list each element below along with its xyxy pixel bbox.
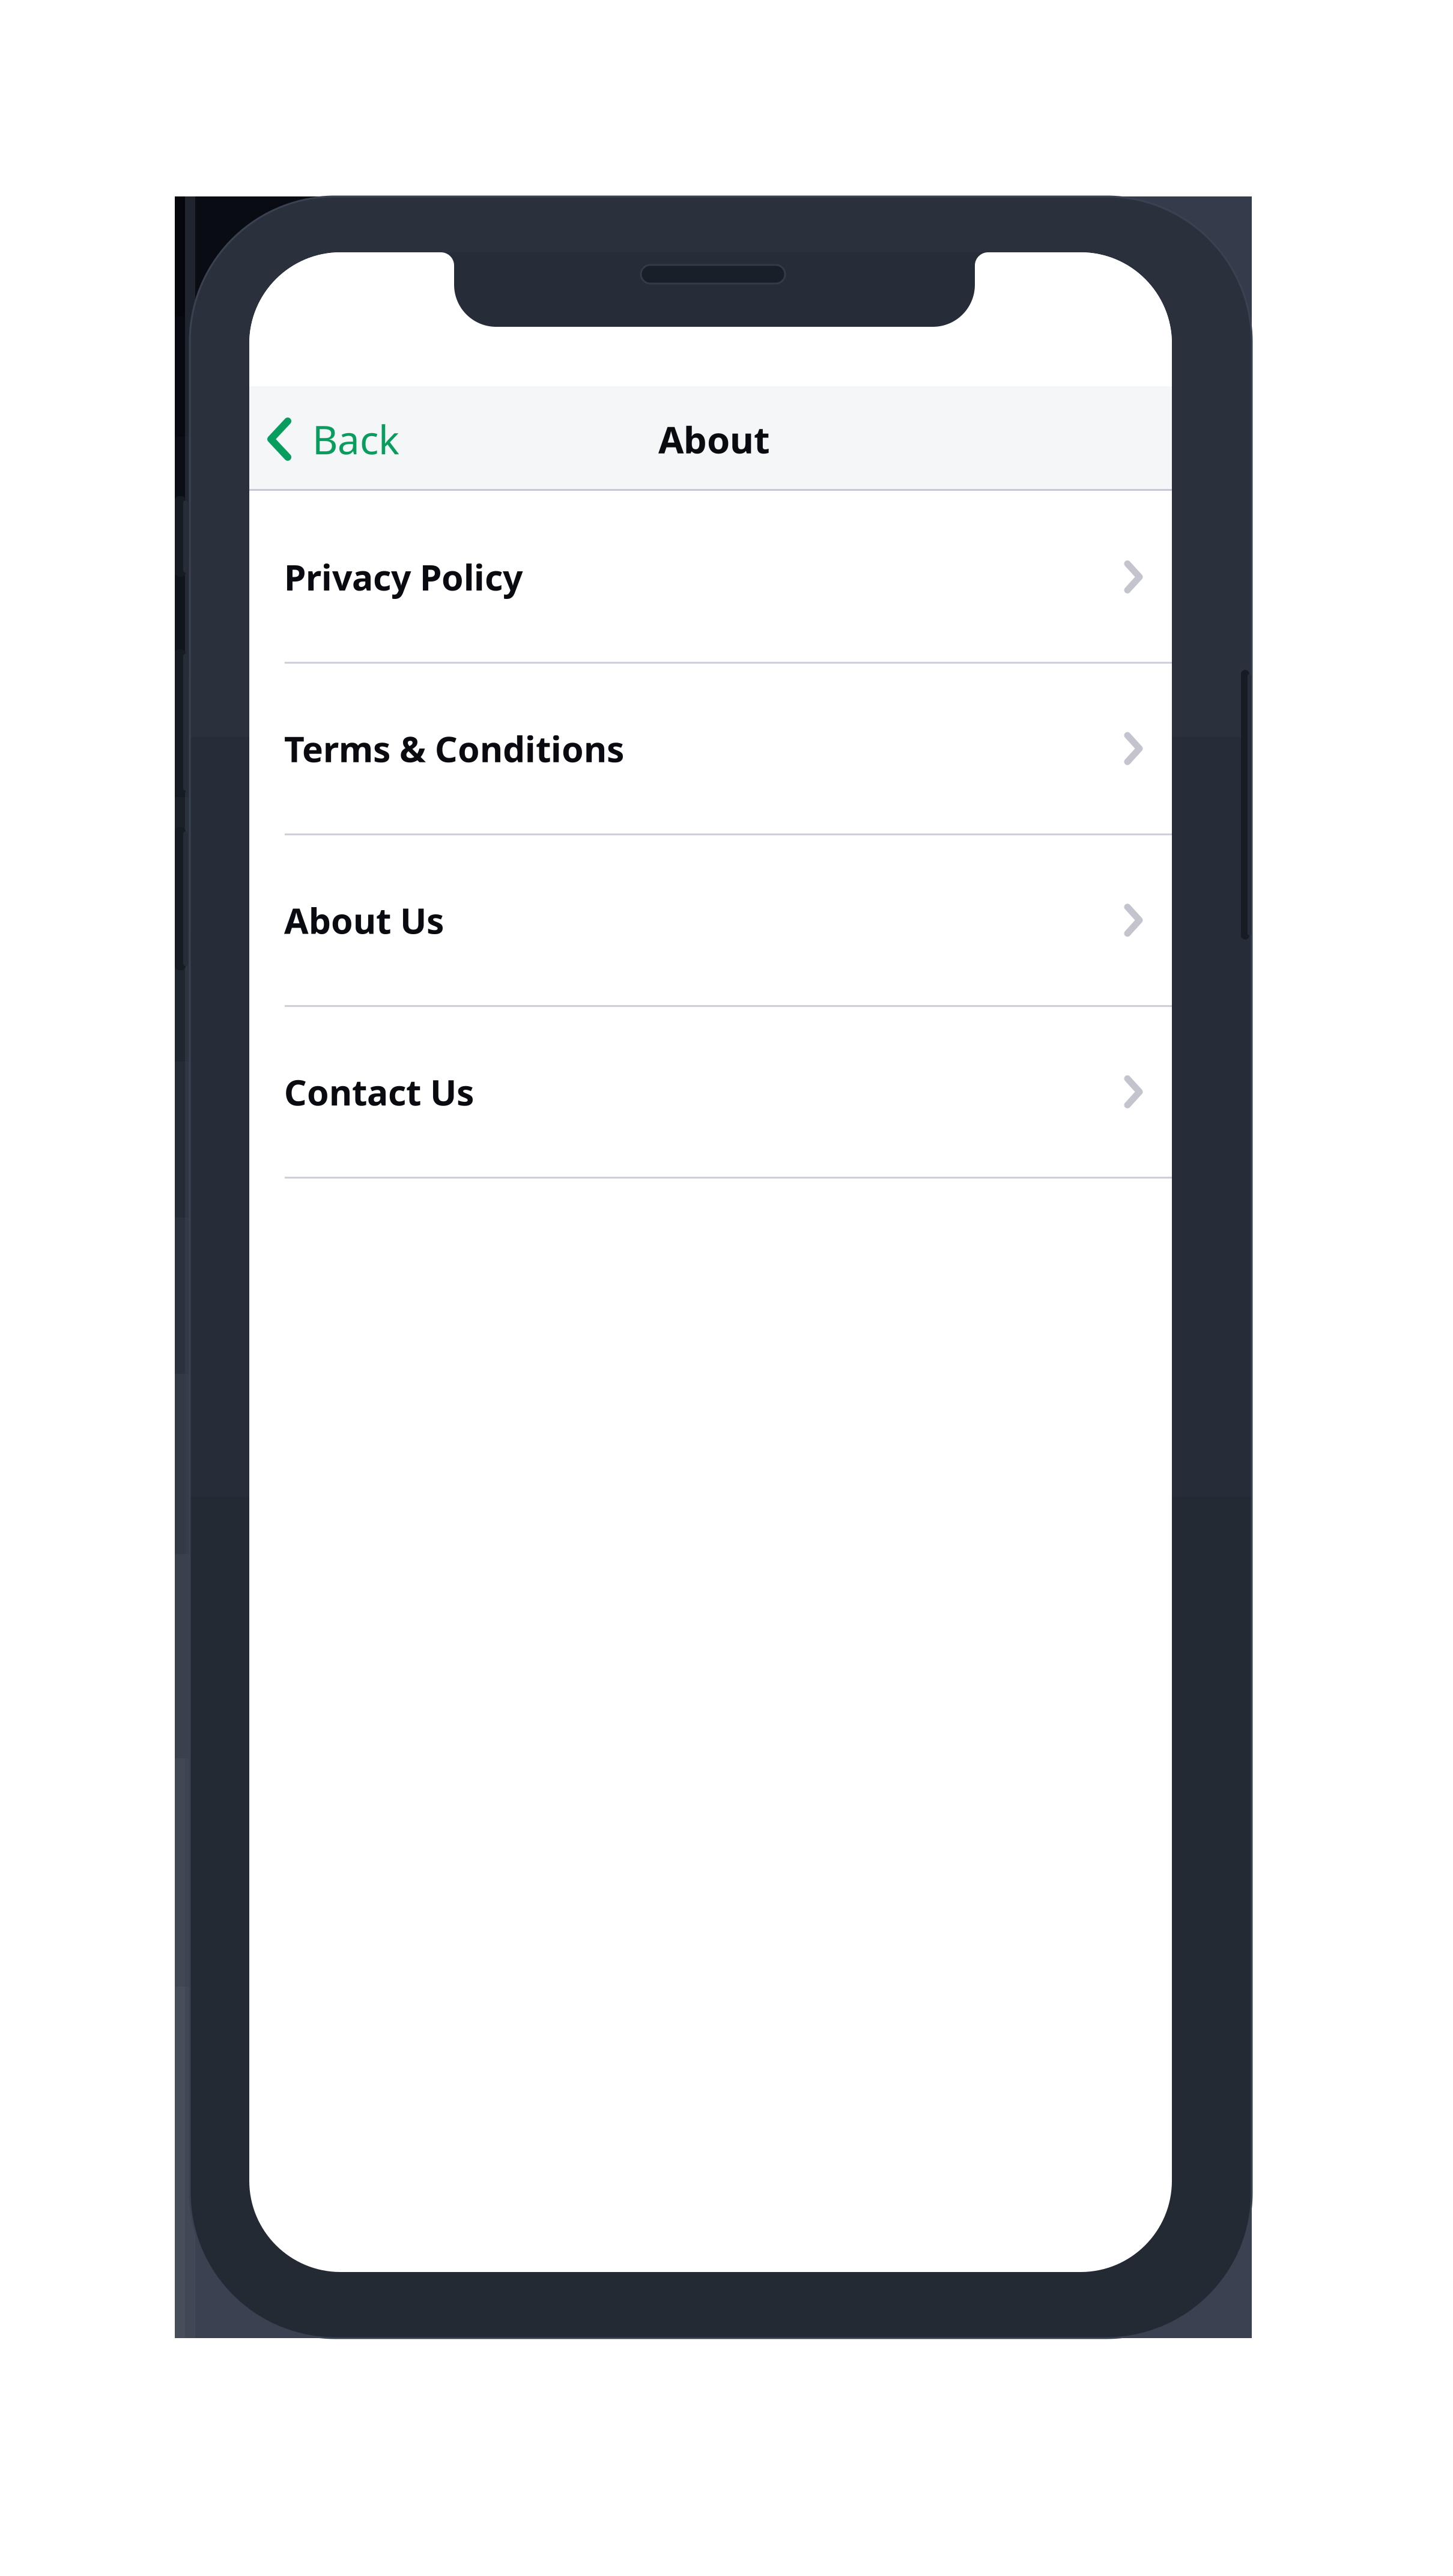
staticText: About Us — [284, 897, 444, 944]
button[interactable]: Contact Us — [249, 1007, 1172, 1179]
staticText: Terms & Conditions — [284, 725, 624, 772]
staticText: Contact Us — [284, 1068, 474, 1115]
staticText: Privacy Policy — [284, 554, 523, 600]
staticText: About — [658, 415, 770, 464]
button[interactable]: Privacy Policy — [249, 492, 1172, 664]
button[interactable]: About Us — [249, 835, 1172, 1007]
button[interactable]: Terms & Conditions — [249, 664, 1172, 835]
button[interactable]: Back — [249, 386, 399, 492]
staticText: Back — [312, 413, 399, 465]
